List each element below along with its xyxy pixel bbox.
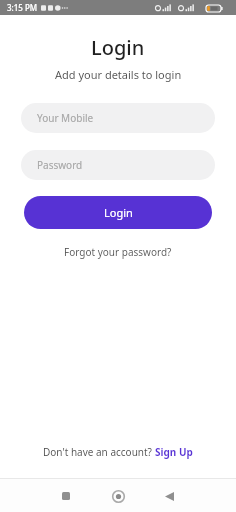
button[interactable]: Sign Up: [155, 445, 193, 459]
button[interactable]: [54, 484, 78, 508]
staticText: Don't have an account?: [43, 445, 155, 459]
button[interactable]: [157, 484, 181, 508]
button[interactable]: [106, 484, 130, 508]
button[interactable]: Forgot your password?: [64, 245, 172, 259]
staticText: 3:15 PM: [7, 2, 38, 13]
staticText: Login: [91, 34, 145, 61]
staticText: Add your details to login: [55, 67, 182, 82]
staticText: Forgot your password?: [64, 245, 172, 259]
staticText: Your Mobile: [37, 111, 94, 125]
staticText: Password: [37, 158, 83, 172]
button[interactable]: Your Mobile: [21, 103, 215, 133]
button[interactable]: Password: [21, 150, 215, 180]
staticText: Sign Up: [155, 445, 193, 459]
button[interactable]: Login: [24, 196, 212, 229]
staticText: Login: [104, 205, 133, 220]
